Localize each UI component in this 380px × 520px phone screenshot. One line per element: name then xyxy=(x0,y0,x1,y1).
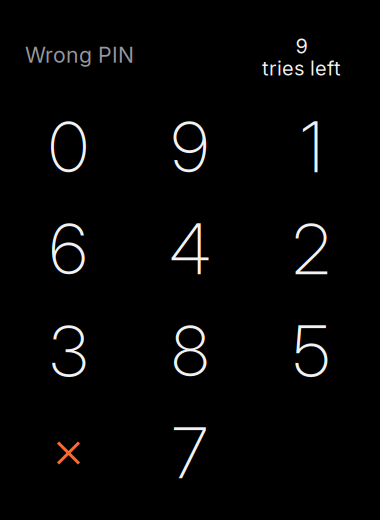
staticText: 1 xyxy=(300,105,322,189)
staticText: 6 xyxy=(49,207,87,291)
button[interactable]: 6 xyxy=(8,198,129,300)
staticText: 2 xyxy=(292,207,330,291)
staticText: 5 xyxy=(293,309,330,393)
button[interactable]: 3 xyxy=(8,300,129,402)
button[interactable]: 0 xyxy=(8,96,129,198)
button[interactable]: 1 xyxy=(251,96,372,198)
staticText: 3 xyxy=(49,309,87,393)
button[interactable]: 9 xyxy=(129,96,251,198)
staticText: 4 xyxy=(169,207,210,291)
staticText: 9 xyxy=(171,105,209,189)
button[interactable]: 2 xyxy=(251,198,372,300)
button[interactable]: Delete xyxy=(8,402,129,504)
button[interactable]: 5 xyxy=(251,300,372,402)
staticText: 8 xyxy=(171,309,208,393)
staticText: Wrong PIN xyxy=(25,42,134,68)
staticText: 7 xyxy=(172,411,208,495)
button[interactable]: 7 xyxy=(129,402,251,504)
button[interactable]: 4 xyxy=(129,198,251,300)
staticText: 0 xyxy=(48,105,88,189)
staticText: 9 xyxy=(295,34,307,58)
button[interactable]: 8 xyxy=(129,300,251,402)
staticText: tries left xyxy=(262,56,341,80)
